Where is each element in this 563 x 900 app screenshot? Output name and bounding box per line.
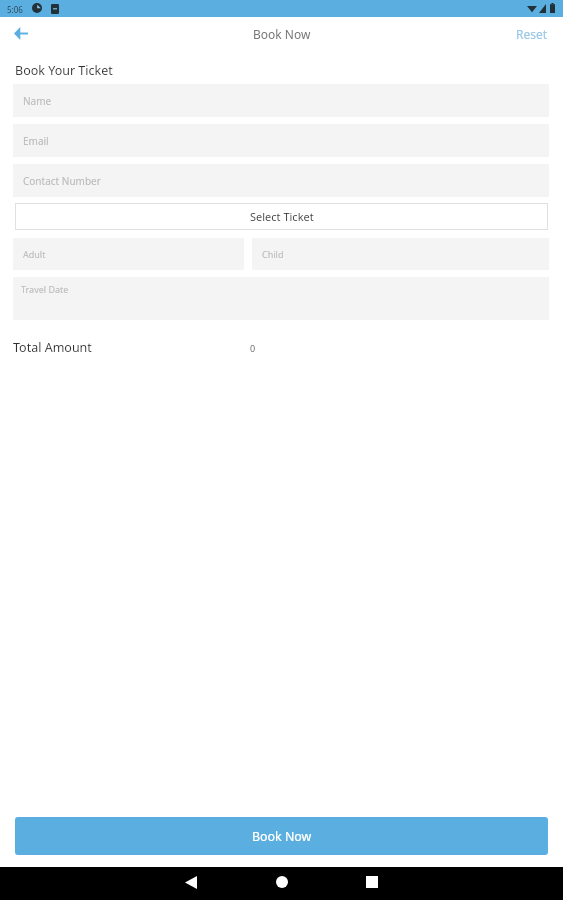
button[interactable]: Contact Number — [13, 164, 549, 197]
staticText: Name — [23, 94, 52, 108]
staticText: Book Now — [252, 828, 312, 845]
staticText: 5:06 — [7, 4, 23, 15]
staticText: Adult — [23, 248, 46, 260]
staticText: Travel Date — [21, 283, 69, 295]
staticText: Book Now — [253, 26, 311, 42]
button[interactable]: Back — [7, 17, 35, 50]
button[interactable]: Recent apps — [351, 867, 393, 897]
staticText: Total Amount — [13, 339, 92, 356]
button[interactable]: Name — [13, 84, 549, 117]
button[interactable]: Select Ticket — [15, 203, 548, 230]
staticText: Email — [23, 134, 49, 148]
button[interactable]: Back — [170, 867, 212, 897]
staticText: 0 — [250, 342, 256, 354]
button[interactable]: Travel Date — [13, 277, 549, 320]
button[interactable]: Book Now — [15, 817, 548, 855]
staticText: Select Ticket — [250, 209, 314, 224]
button[interactable]: Home — [261, 867, 303, 897]
staticText: Reset — [516, 26, 548, 42]
staticText: Contact Number — [23, 174, 101, 188]
button[interactable]: Email — [13, 124, 549, 157]
button[interactable]: Adult — [13, 238, 244, 270]
staticText: Book Your Ticket — [15, 62, 113, 79]
button[interactable]: Child — [252, 238, 549, 270]
staticText: Child — [262, 248, 284, 260]
button[interactable]: Reset — [502, 26, 563, 42]
